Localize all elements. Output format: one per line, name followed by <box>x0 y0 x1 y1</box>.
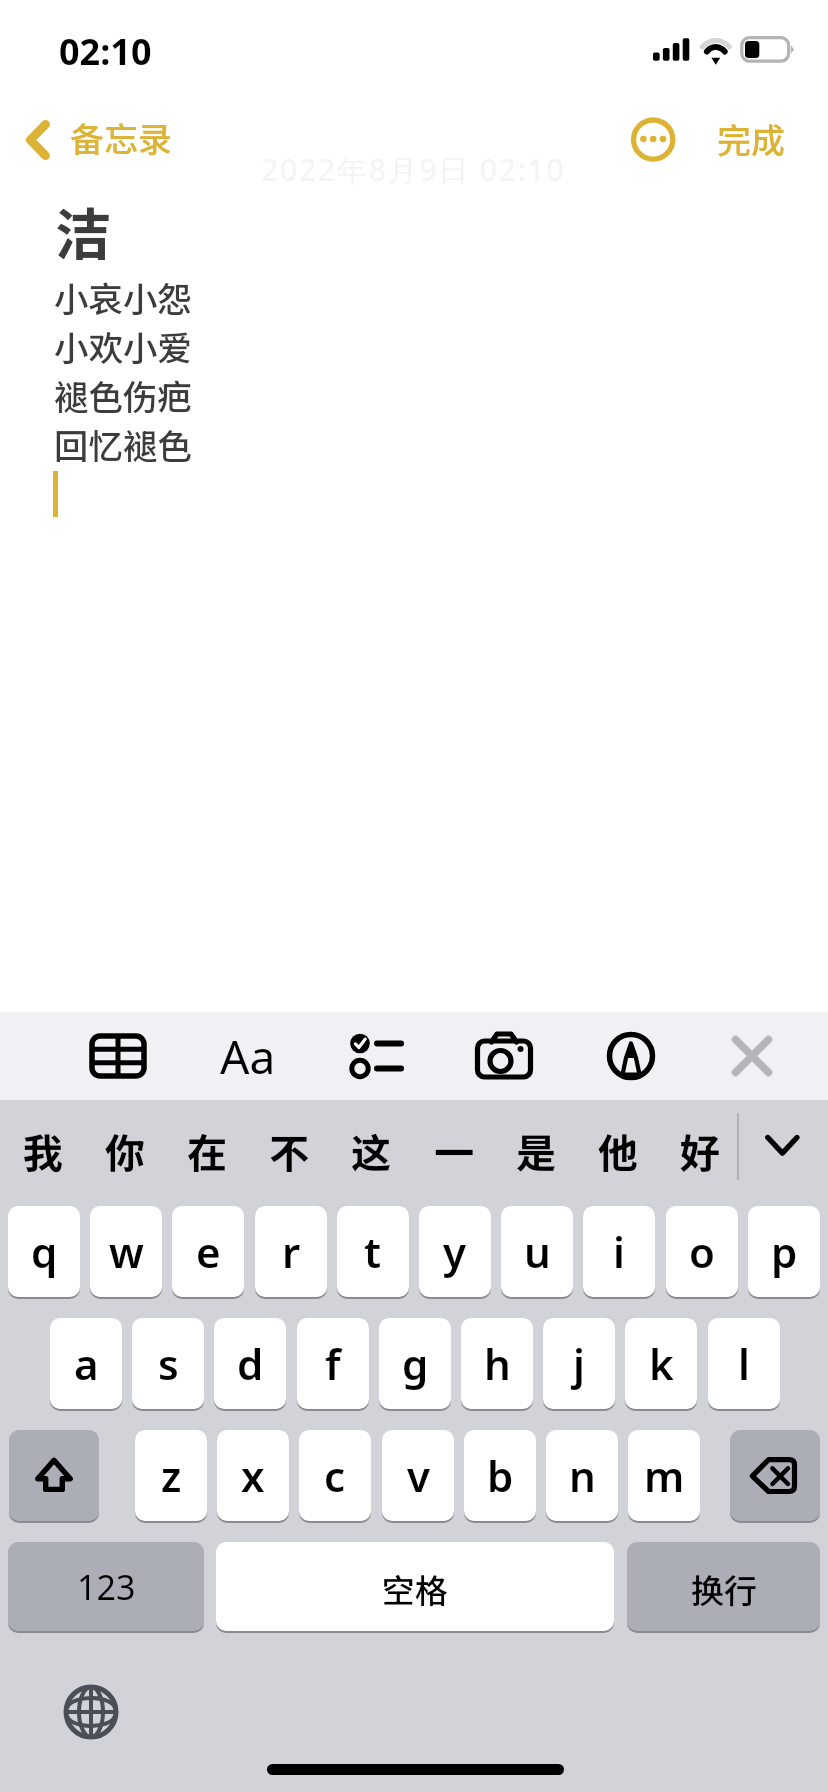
button[interactable]: a <box>50 1318 122 1411</box>
button[interactable]: Take photo <box>460 1012 548 1100</box>
staticText: b <box>487 1447 514 1504</box>
staticText: d <box>237 1335 264 1392</box>
button[interactable]: g <box>379 1318 451 1411</box>
button[interactable]: y <box>419 1206 491 1299</box>
staticText: 02:10 <box>59 27 152 76</box>
staticText: z <box>161 1447 182 1504</box>
staticText: i <box>613 1223 625 1280</box>
staticText: 是 <box>516 1122 556 1180</box>
button[interactable]: More options <box>624 110 682 168</box>
button[interactable]: 空格 <box>216 1542 614 1633</box>
button[interactable]: q <box>8 1206 80 1299</box>
button[interactable]: j <box>543 1318 615 1411</box>
staticText: 小哀小怨 小欢小爱 褪色伤疤 回忆褪色 <box>54 272 192 469</box>
button[interactable]: h <box>461 1318 533 1411</box>
button[interactable]: 一 <box>413 1106 495 1196</box>
button[interactable]: Markup <box>587 1012 675 1100</box>
staticText: t <box>364 1223 382 1280</box>
button[interactable]: t <box>337 1206 409 1299</box>
button[interactable]: 是 <box>495 1106 577 1196</box>
button[interactable]: w <box>90 1206 162 1299</box>
staticText: q <box>31 1223 58 1280</box>
button[interactable]: More candidates <box>740 1108 828 1198</box>
button[interactable]: Hide keyboard <box>708 1012 796 1100</box>
button[interactable]: Backspace <box>730 1430 820 1523</box>
staticText: w <box>109 1223 144 1280</box>
staticText: f <box>325 1335 341 1392</box>
button[interactable]: r <box>255 1206 327 1299</box>
button[interactable]: 你 <box>84 1106 166 1196</box>
staticText: 他 <box>598 1122 638 1180</box>
button[interactable]: Aa <box>198 1012 298 1100</box>
staticText: 这 <box>351 1122 391 1180</box>
button[interactable]: 他 <box>577 1106 659 1196</box>
staticText: 2022年8月9日 02:10 <box>261 149 566 190</box>
button[interactable]: b <box>464 1430 536 1523</box>
staticText: 123 <box>77 1564 136 1610</box>
staticText: 不 <box>269 1122 309 1180</box>
button[interactable]: 好 <box>659 1106 741 1196</box>
button[interactable]: u <box>501 1206 573 1299</box>
staticText: m <box>644 1447 685 1504</box>
staticText: 完成 <box>717 114 785 163</box>
button[interactable]: m <box>628 1430 700 1523</box>
staticText: s <box>158 1335 179 1392</box>
button[interactable]: x <box>217 1430 289 1523</box>
button[interactable]: 不 <box>248 1106 330 1196</box>
staticText: o <box>689 1223 715 1280</box>
staticText: 我 <box>23 1122 63 1180</box>
button[interactable]: Switch keyboard <box>63 1684 119 1740</box>
button[interactable]: e <box>172 1206 244 1299</box>
staticText: 空格 <box>382 1565 448 1613</box>
staticText: n <box>569 1447 596 1504</box>
button[interactable]: 完成 <box>717 110 807 166</box>
button[interactable]: 123 <box>8 1542 204 1633</box>
button[interactable]: c <box>299 1430 371 1523</box>
staticText: r <box>282 1223 301 1280</box>
staticText: p <box>771 1223 798 1280</box>
button[interactable]: v <box>382 1430 454 1523</box>
button[interactable]: f <box>297 1318 369 1411</box>
staticText: 一 <box>434 1122 474 1180</box>
staticText: u <box>524 1223 551 1280</box>
button[interactable]: o <box>666 1206 738 1299</box>
staticText: e <box>196 1223 221 1280</box>
staticText: k <box>649 1335 674 1392</box>
staticText: g <box>402 1335 429 1392</box>
button[interactable]: p <box>748 1206 820 1299</box>
staticText: a <box>74 1335 99 1392</box>
staticText: 好 <box>680 1122 720 1180</box>
button[interactable]: k <box>625 1318 697 1411</box>
button[interactable]: 我 <box>2 1106 84 1196</box>
staticText: c <box>324 1447 346 1504</box>
staticText: 在 <box>187 1122 227 1180</box>
button[interactable]: i <box>583 1206 655 1299</box>
button[interactable]: Insert table <box>74 1012 162 1100</box>
staticText: 备忘录 <box>70 113 172 162</box>
staticText: y <box>443 1223 467 1280</box>
staticText: 洁 <box>55 190 111 271</box>
button[interactable]: s <box>132 1318 204 1411</box>
button[interactable]: z <box>135 1430 207 1523</box>
button[interactable]: Checklist <box>332 1012 420 1100</box>
staticText: v <box>407 1447 430 1504</box>
staticText: 你 <box>105 1122 145 1180</box>
staticText: l <box>738 1335 750 1392</box>
button[interactable]: Shift <box>9 1430 99 1523</box>
button[interactable]: 换行 <box>627 1542 820 1633</box>
button[interactable]: n <box>546 1430 618 1523</box>
button[interactable]: 在 <box>166 1106 248 1196</box>
staticText: j <box>573 1335 585 1392</box>
button[interactable]: 备忘录 <box>22 102 172 172</box>
staticText: h <box>484 1335 511 1392</box>
staticText: x <box>241 1447 265 1504</box>
staticText: Aa <box>220 1025 276 1088</box>
button[interactable]: d <box>214 1318 286 1411</box>
staticText: 换行 <box>691 1565 757 1613</box>
button[interactable]: l <box>708 1318 780 1411</box>
button[interactable]: 这 <box>330 1106 412 1196</box>
